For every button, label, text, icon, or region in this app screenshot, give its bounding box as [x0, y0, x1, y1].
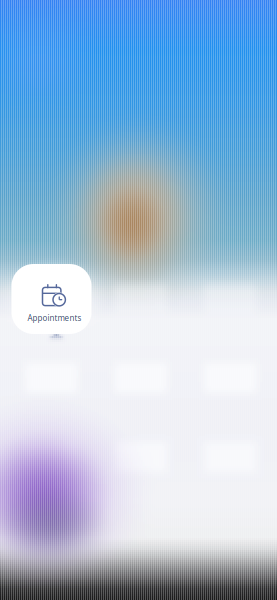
staticText: Appointments	[27, 313, 81, 323]
button[interactable]: Appointments	[11, 264, 91, 334]
